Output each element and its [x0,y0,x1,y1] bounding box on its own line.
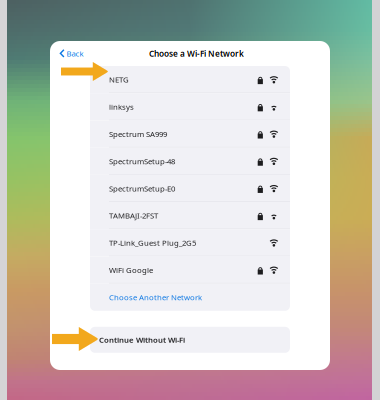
staticText: TP-Link_Guest Plug_2G5 [109,237,196,248]
button[interactable]: Spectrum SA999 [90,120,290,148]
button[interactable]: NETG [90,66,290,93]
staticText: SpectrumSetup-48 [109,156,175,166]
staticText: WiFi Google [109,265,153,275]
button[interactable]: Back [50,43,92,64]
button[interactable]: WiFi Google [90,256,290,284]
staticText: Spectrum SA999 [109,129,167,139]
staticText: Back [66,48,83,59]
button[interactable]: Choose Another Network [90,284,290,311]
button[interactable]: SpectrumSetup-48 [90,148,290,175]
button[interactable]: linksys [90,93,290,120]
button[interactable]: Continue Without Wi-Fi [90,327,290,353]
button[interactable]: SpectrumSetup-E0 [90,175,290,202]
staticText: Choose a Wi-Fi Network [149,48,244,59]
button[interactable]: TP-Link_Guest Plug_2G5 [90,229,290,256]
staticText: NETG [109,74,129,85]
staticText: Continue Without Wi-Fi [99,334,185,345]
staticText: Choose Another Network [109,292,202,302]
staticText: SpectrumSetup-E0 [109,183,175,194]
staticText: TAMBAJI-2FST [109,210,158,221]
button[interactable]: TAMBAJI-2FST [90,202,290,229]
staticText: linksys [109,101,134,112]
